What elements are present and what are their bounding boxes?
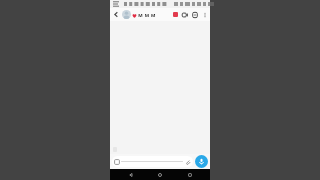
- button[interactable]: Video call: [180, 10, 190, 20]
- button[interactable]: Home: [151, 169, 169, 180]
- button[interactable]: Status: [171, 10, 180, 19]
- button[interactable]: Back: [111, 9, 122, 20]
- button[interactable]: Contact photo: [122, 10, 131, 19]
- button[interactable]: Call: [190, 10, 200, 20]
- button[interactable]: Recent apps: [181, 169, 199, 180]
- button[interactable]: ᴍ ᴍ ᴍ: [132, 11, 171, 19]
- button[interactable]: More options: [200, 10, 209, 19]
- button[interactable]: Send voice message: [195, 155, 208, 168]
- button[interactable]: [112, 156, 193, 167]
- staticText: ᴍ ᴍ ᴍ: [138, 11, 156, 19]
- button[interactable]: Back: [122, 169, 140, 180]
